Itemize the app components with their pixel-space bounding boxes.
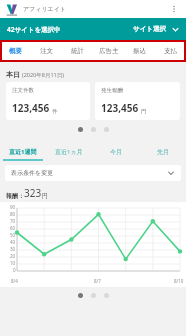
button[interactable]: 直近1ヵ月 [46, 143, 92, 161]
staticText: 80 [10, 211, 16, 217]
staticText: 20 [10, 253, 16, 259]
staticText: 8/10 [174, 278, 184, 284]
staticText: 30 [10, 246, 16, 252]
button[interactable]: Page 2 [91, 293, 96, 298]
button[interactable]: 先月 [139, 143, 186, 161]
staticText: 今月 [110, 148, 122, 156]
staticText: 概要 [9, 47, 22, 55]
staticText: 40 [10, 239, 16, 245]
button[interactable]: Page 3 [104, 127, 109, 132]
staticText: 注文 [40, 47, 53, 55]
staticText: 70 [10, 218, 16, 224]
button[interactable]: 今月 [92, 143, 139, 161]
button[interactable]: 直近1週間 [0, 143, 46, 161]
staticText: 直近1ヵ月 [55, 148, 83, 156]
staticText: 先月 [157, 148, 169, 156]
staticText: 表示条件を変更 [11, 169, 54, 177]
button[interactable]: 支払 [155, 40, 186, 62]
staticText: サイト選択 [133, 25, 166, 33]
button[interactable]: 注文件数 [6, 82, 90, 120]
staticText: 広告主 [99, 47, 119, 55]
staticText: 8/4 [11, 278, 18, 284]
button[interactable]: 統計 [62, 40, 93, 62]
button[interactable]: Page 3 [104, 293, 109, 298]
staticText: 件 [52, 108, 58, 115]
button[interactable]: 発生報酬 [95, 82, 180, 120]
button[interactable]: 振込 [124, 40, 155, 62]
staticText: 10 [10, 260, 16, 266]
staticText: 円 [42, 192, 48, 200]
staticText: (2020年8月11日) [22, 71, 64, 79]
button[interactable]: 広告主 [93, 40, 124, 62]
button[interactable]: 概要 [0, 40, 31, 62]
button[interactable]: Page 1 [78, 127, 83, 132]
staticText: アフィリエイト [23, 5, 66, 13]
staticText: 8/7 [94, 278, 101, 284]
staticText: 42サイトを選択中 [7, 25, 61, 34]
staticText: 123,456 [12, 101, 50, 115]
staticText: ： [18, 192, 24, 200]
staticText: 円 [141, 108, 147, 115]
staticText: 323 [24, 186, 42, 200]
staticText: 本日 [6, 70, 20, 79]
button[interactable]: Page 1 [78, 293, 83, 298]
staticText: 統計 [71, 47, 84, 55]
button[interactable]: 42サイトを選択中 [0, 18, 186, 40]
staticText: 123,456 [101, 101, 139, 115]
staticText: 60 [10, 225, 16, 231]
staticText: 発生報酬 [101, 87, 123, 94]
staticText: 50 [10, 232, 16, 238]
button[interactable]: More options [166, 1, 182, 17]
button[interactable]: 注文 [31, 40, 62, 62]
staticText: 直近1週間 [9, 148, 37, 156]
staticText: 0 [13, 267, 16, 273]
staticText: 報酬 [6, 192, 18, 200]
staticText: 90 [10, 204, 16, 210]
button[interactable]: Page 2 [91, 127, 96, 132]
button[interactable]: 表示条件を変更 [5, 165, 181, 181]
staticText: 支払 [164, 47, 177, 55]
staticText: 注文件数 [12, 87, 34, 94]
staticText: 振込 [133, 47, 146, 55]
